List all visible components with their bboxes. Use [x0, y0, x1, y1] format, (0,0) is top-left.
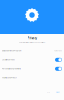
staticText: Analytics and Privacy: [2, 77, 17, 79]
button[interactable]: Analytics and Privacy: [0, 73, 64, 82]
button[interactable]: Data Experience Program: [0, 46, 64, 55]
button[interactable]: Next: [56, 91, 59, 93]
staticText: Next: [56, 91, 59, 93]
button[interactable]: Personalized Agreements: [0, 64, 64, 73]
button[interactable]: Location Services: [0, 55, 64, 64]
staticText: Personalized Agreements: [2, 68, 21, 70]
staticText: Authorized: [54, 50, 62, 52]
staticText: Location Services: [2, 59, 15, 61]
staticText: Privacy: [27, 36, 36, 40]
staticText: v1.2: [47, 91, 50, 93]
staticText: Control what information you share with …: [18, 41, 45, 43]
staticText: Data Experience Program: [2, 50, 21, 52]
